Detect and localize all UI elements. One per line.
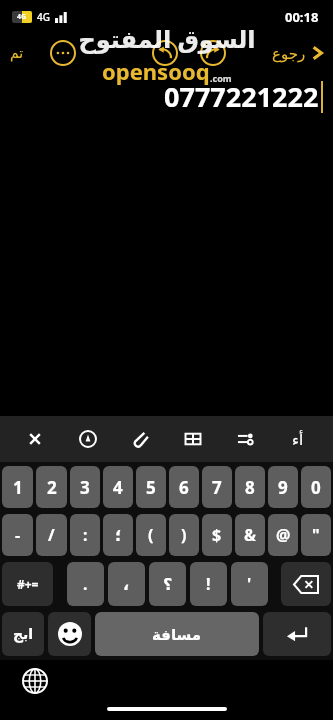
staticText: .com	[210, 72, 232, 84]
button[interactable]: Table	[176, 422, 210, 456]
button[interactable]: &	[235, 514, 265, 556]
button[interactable]: (	[136, 514, 166, 556]
staticText: 00:18	[285, 8, 319, 26]
button[interactable]: Attach	[123, 422, 157, 456]
button[interactable]: Language	[281, 422, 315, 456]
staticText: $	[212, 524, 222, 546]
staticText: 7	[212, 476, 222, 499]
staticText: )	[181, 524, 187, 546]
staticText: &	[244, 524, 257, 546]
button[interactable]: /	[36, 514, 67, 556]
staticText: /	[48, 524, 55, 546]
staticText: السوق المفتوح	[78, 22, 256, 55]
staticText: 8	[245, 476, 255, 499]
button[interactable]: 1	[2, 466, 33, 508]
staticText: 1	[13, 476, 23, 499]
staticText: opensooq	[102, 56, 210, 86]
button[interactable]: Emoji	[48, 612, 91, 656]
staticText: رجوع	[272, 45, 306, 62]
staticText: 5	[146, 476, 156, 499]
button[interactable]: @	[268, 514, 298, 556]
button[interactable]: 8	[235, 466, 265, 508]
button[interactable]: 2	[36, 466, 67, 508]
staticText: 4	[113, 476, 123, 499]
staticText: 9	[278, 476, 288, 499]
button[interactable]: Change language	[22, 668, 48, 694]
button[interactable]: 3	[70, 466, 100, 508]
button[interactable]: -	[2, 514, 33, 556]
button[interactable]: Handwriting	[71, 422, 105, 456]
staticText: مسافة	[152, 626, 202, 643]
button[interactable]: "	[301, 514, 331, 556]
staticText: 3	[80, 476, 90, 499]
staticText: ؟	[163, 575, 173, 594]
button[interactable]: Enter	[263, 612, 331, 656]
button[interactable]: :	[70, 514, 100, 556]
staticText: 2	[47, 476, 57, 499]
staticText: -	[15, 524, 21, 546]
staticText: 0777221222	[164, 78, 319, 115]
staticText: ابج	[13, 626, 34, 642]
button[interactable]: 7	[202, 466, 232, 508]
staticText: ،	[123, 575, 130, 594]
button[interactable]: Backspace	[281, 562, 331, 606]
button[interactable]: 6	[169, 466, 199, 508]
button[interactable]: ؟	[149, 562, 186, 606]
staticText: ؛	[115, 526, 122, 545]
staticText: تم	[10, 45, 24, 61]
staticText: .	[83, 573, 88, 595]
staticText: #+=	[17, 576, 39, 592]
staticText: @	[276, 524, 291, 546]
button[interactable]: ابج	[2, 612, 44, 656]
staticText: 4G	[17, 12, 27, 22]
staticText: 0	[311, 476, 321, 499]
staticText: 6	[179, 476, 189, 499]
button[interactable]: More options	[46, 36, 80, 70]
button[interactable]: Undo	[148, 36, 182, 70]
button[interactable]: Settings	[228, 422, 262, 456]
button[interactable]: ؛	[103, 514, 133, 556]
staticText: (	[148, 524, 154, 546]
staticText: 4G	[37, 10, 50, 24]
button[interactable]: 9	[268, 466, 298, 508]
button[interactable]: $	[202, 514, 232, 556]
button[interactable]: تم	[2, 39, 32, 67]
staticText: "	[312, 524, 320, 546]
button[interactable]: '	[231, 562, 268, 606]
button[interactable]: 0	[301, 466, 331, 508]
button[interactable]: ،	[108, 562, 145, 606]
button[interactable]: !	[190, 562, 227, 606]
button[interactable]: .	[67, 562, 104, 606]
button[interactable]: Close	[18, 422, 52, 456]
button[interactable]: #+=	[2, 562, 53, 606]
button[interactable]: رجوع	[266, 40, 329, 66]
button[interactable]: 5	[136, 466, 166, 508]
staticText: '	[247, 573, 252, 595]
button[interactable]: 4	[103, 466, 133, 508]
staticText: :	[83, 524, 88, 546]
button[interactable]: Redo	[196, 36, 230, 70]
button[interactable]: مسافة	[95, 612, 259, 656]
staticText: أء	[292, 431, 304, 448]
staticText: !	[206, 573, 211, 595]
button[interactable]: )	[169, 514, 199, 556]
